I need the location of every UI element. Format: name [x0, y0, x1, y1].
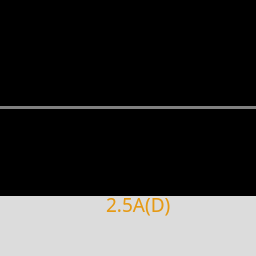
staticText: 2.5A(D): [106, 192, 171, 218]
button[interactable]: [0, 196, 256, 256]
